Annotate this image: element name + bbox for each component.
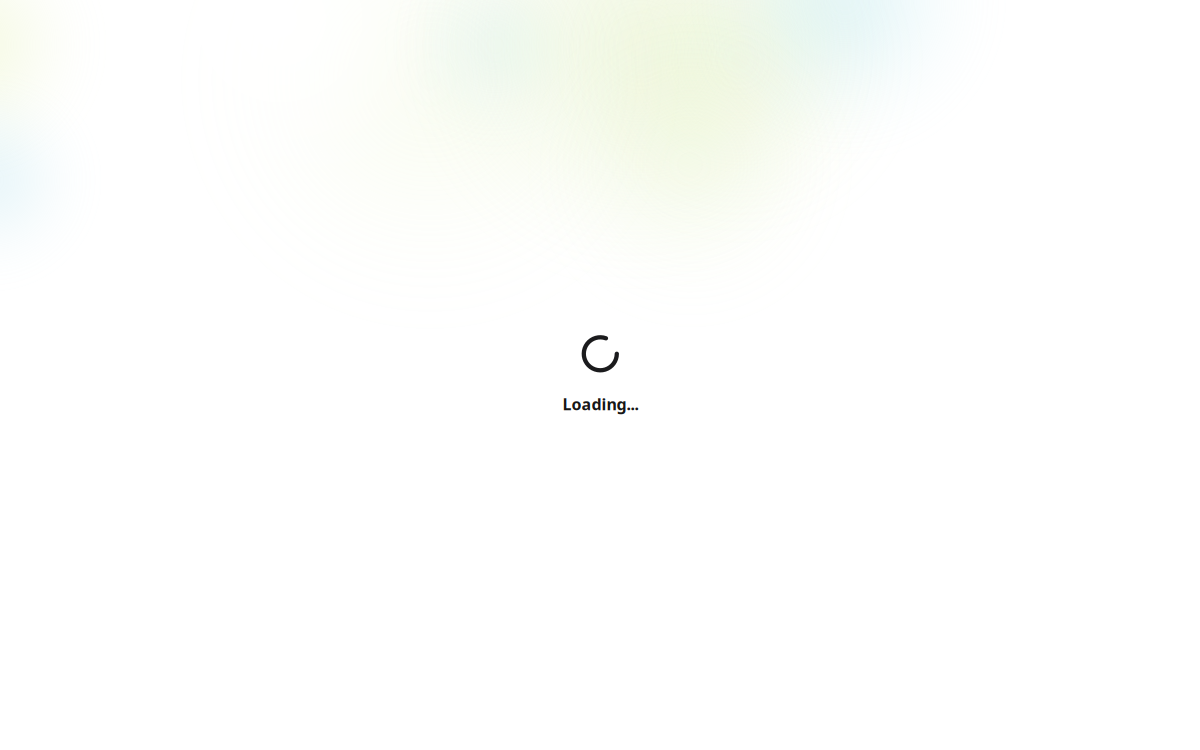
- staticText: Loading...: [562, 393, 638, 415]
